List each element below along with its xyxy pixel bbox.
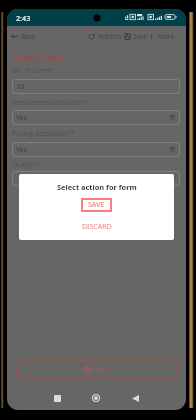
button[interactable]: Back [125,388,145,408]
staticText: Save [133,32,148,41]
button[interactable]: Refresh [86,26,124,46]
button[interactable]: Yes [12,110,180,125]
staticText: 10 [16,82,25,92]
staticText: 2:43 [16,13,31,23]
button[interactable]: 10 [12,79,180,94]
staticText: Refresh [98,32,122,41]
staticText: SAVE [88,200,105,210]
staticText: Qualify Lead [11,52,62,64]
button[interactable] [12,171,180,186]
staticText: Qualify?* [12,160,41,169]
staticText: Yes [16,113,27,123]
button[interactable]: Home [86,388,106,408]
staticText: More [158,32,175,41]
button[interactable]: DISCARD [79,222,115,232]
staticText: Select action for form [57,182,137,192]
button[interactable]: Save [122,26,150,46]
staticText: Requirements Feasible?* [12,98,88,107]
staticText: Back [21,32,36,41]
button[interactable]: Back [9,26,38,46]
button[interactable]: SAVE [16,360,177,379]
staticText: SAVE [94,365,110,374]
button[interactable]: More [146,26,177,46]
staticText: Pricing Acceptable?* [12,129,75,138]
staticText: DISCARD [82,222,112,232]
staticText: No. of Users* [12,66,54,75]
button[interactable]: SAVE [81,198,112,212]
button[interactable]: Yes [12,142,180,157]
staticText: Yes [16,145,27,155]
button[interactable]: Recent apps [47,388,67,408]
